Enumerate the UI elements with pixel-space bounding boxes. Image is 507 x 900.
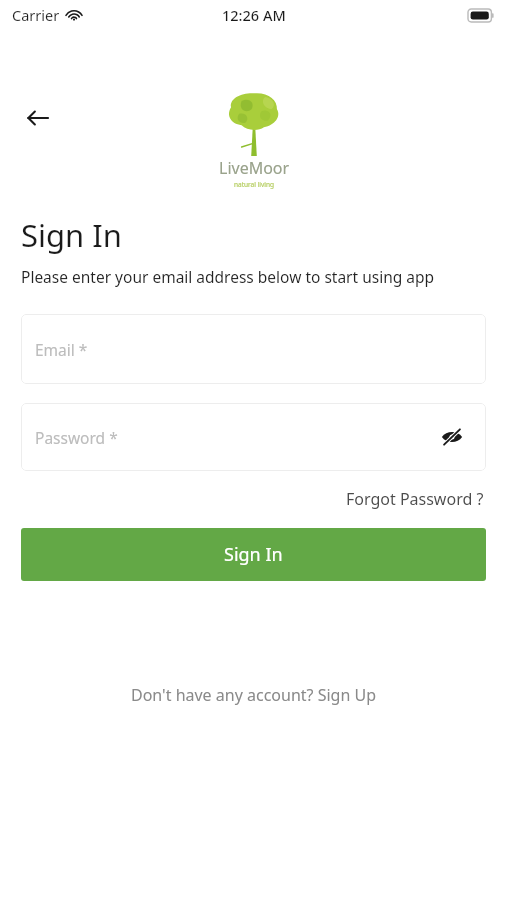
button[interactable]: Forgot Password ? <box>344 483 486 515</box>
staticText: Carrier <box>12 5 60 25</box>
staticText: Don't have any account? Sign Up <box>131 684 376 706</box>
staticText: Forgot Password ? <box>346 488 484 510</box>
button[interactable]: Sign In <box>21 528 486 581</box>
staticText: natural living <box>234 180 274 189</box>
button[interactable]: Don't have any account? Sign Up <box>123 678 384 712</box>
staticText: Sign In <box>21 214 122 256</box>
button[interactable]: Email * <box>21 314 486 384</box>
staticText: Email * <box>35 339 88 360</box>
button[interactable]: Show password <box>432 417 472 457</box>
staticText: Please enter your email address below to… <box>21 266 435 287</box>
staticText: Sign In <box>224 542 283 567</box>
button[interactable]: Password * <box>21 403 486 471</box>
button[interactable]: Back <box>14 94 62 142</box>
staticText: LiveMoor <box>219 157 290 179</box>
staticText: 12:26 AM <box>222 5 286 25</box>
staticText: Password * <box>35 427 118 448</box>
